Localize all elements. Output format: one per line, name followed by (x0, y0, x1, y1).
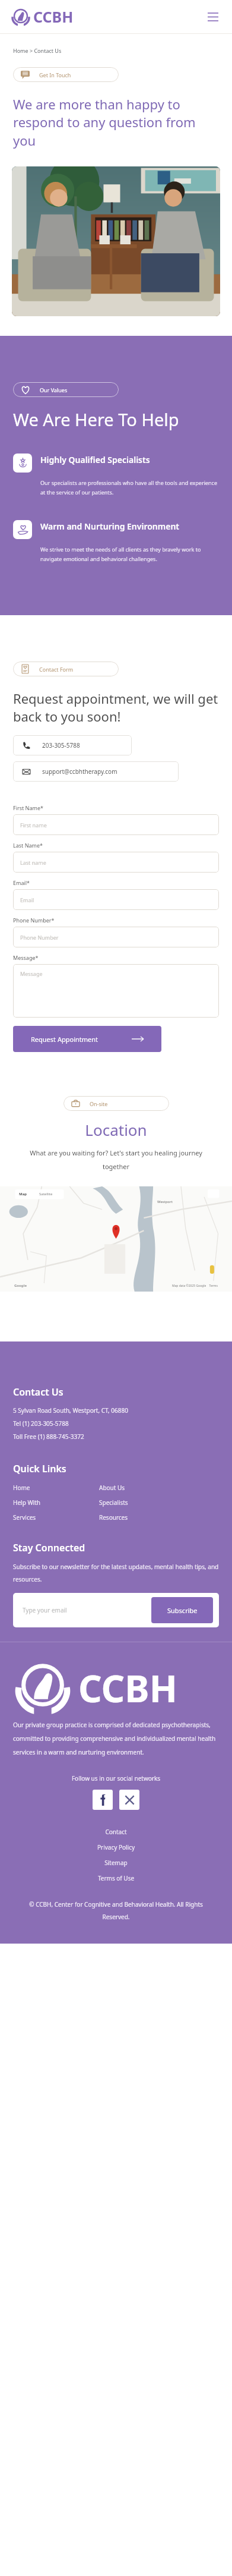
staticText: Google (14, 1283, 27, 1288)
staticText: Message (20, 970, 43, 977)
staticText: CCBH (78, 1663, 178, 1713)
staticText: Request appointment, we will get back to… (13, 689, 219, 726)
button[interactable]: Subscribe (151, 1597, 213, 1623)
staticText: Contact Form (39, 666, 74, 673)
button[interactable]: About Us (99, 1484, 125, 1492)
staticText: Satellite (39, 1192, 53, 1196)
staticText: 203-305-5788 (42, 741, 80, 750)
button[interactable]: Open menu (205, 8, 221, 25)
staticText: Our Values (40, 386, 68, 393)
button[interactable]: Services (13, 1513, 36, 1522)
staticText: Our private group practice is comprised … (13, 1721, 219, 1756)
staticText: Message* (13, 954, 39, 961)
staticText: Subscribe to our newsletter for the late… (13, 1563, 219, 1583)
button[interactable]: Get In Touch (13, 67, 119, 82)
button[interactable]: Terms of Use (0, 1874, 232, 1882)
staticText: Phone Number (20, 934, 59, 941)
staticText: Warm and Nurturing Environment (40, 521, 219, 532)
staticText: CCBH (33, 7, 74, 27)
staticText: Phone Number* (13, 917, 55, 924)
staticText: support@ccbhtherapy.com (42, 767, 117, 776)
staticText: Stay Connected (13, 1541, 85, 1554)
button[interactable]: Message (13, 964, 219, 1018)
button[interactable]: X (119, 1790, 139, 1810)
button[interactable]: Email (13, 889, 219, 910)
button[interactable]: Tel (1) 203-305-5788 (13, 1419, 69, 1428)
button[interactable]: Toll Free (1) 888-745-3372 (13, 1432, 84, 1441)
button[interactable]: Our Values (13, 382, 119, 397)
button[interactable]: Facebook (93, 1790, 113, 1810)
staticText: Subscribe (167, 1606, 198, 1615)
button[interactable]: Home (13, 1484, 30, 1492)
staticText: Email (20, 896, 34, 903)
staticText: Email* (13, 879, 30, 886)
button[interactable]: Request Appointment (13, 1026, 161, 1052)
staticText: On-site (90, 1100, 108, 1107)
staticText: Westport (157, 1199, 173, 1204)
button[interactable]: Privacy Policy (0, 1843, 232, 1851)
staticText: Request Appointment (31, 1035, 98, 1044)
button[interactable]: Type your email (23, 1606, 67, 1614)
staticText: Contact Us (13, 1385, 63, 1399)
staticText: Last Name* (13, 842, 43, 849)
staticText: What are you waiting for? Let's start yo… (20, 1148, 212, 1171)
button[interactable]: On-site (63, 1096, 169, 1111)
staticText: First Name* (13, 804, 43, 811)
button[interactable]: Resources (99, 1513, 128, 1522)
button[interactable]: First name (13, 814, 219, 835)
button[interactable]: Contact (0, 1828, 232, 1836)
staticText: Last name (20, 859, 46, 866)
staticText: Highly Qualified Specialists (40, 454, 219, 465)
staticText: © CCBH, Center for Cognitive and Behavio… (15, 1900, 217, 1921)
staticText: Follow us in our social networks (0, 1774, 232, 1783)
staticText: First name (20, 821, 47, 829)
staticText: Our specialists are professionals who ha… (40, 479, 219, 496)
staticText: Location (0, 1119, 232, 1140)
staticText: 5 Sylvan Road South, Westport, CT, 06880 (13, 1406, 128, 1415)
staticText: We Are Here To Help (13, 408, 179, 431)
button[interactable]: Specialists (99, 1498, 128, 1507)
staticText: Home > Contact Us (13, 47, 62, 54)
button[interactable]: Last name (13, 852, 219, 873)
button[interactable]: Sitemap (0, 1859, 232, 1867)
button[interactable]: Contact Form (13, 662, 119, 676)
staticText: Get In Touch (39, 71, 71, 78)
button[interactable]: Help With (13, 1498, 41, 1507)
staticText: Map (19, 1192, 27, 1196)
button[interactable]: Phone Number (13, 927, 219, 947)
staticText: Map data ©2025 Google Terms (172, 1284, 218, 1288)
button[interactable]: support@ccbhtherapy.com (13, 761, 179, 782)
staticText: We strive to meet the needs of all clien… (40, 546, 219, 563)
button[interactable]: 203-305-5788 (13, 735, 132, 755)
button[interactable]: CCBH (11, 7, 74, 27)
staticText: We are more than happy to respond to any… (13, 95, 219, 150)
staticText: Quick Links (13, 1462, 66, 1475)
